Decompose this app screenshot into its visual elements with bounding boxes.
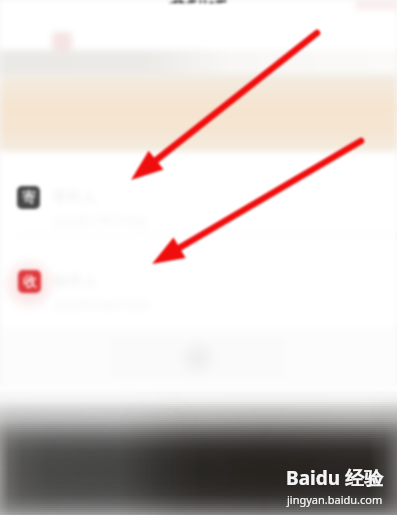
button[interactable]: 收件人 bbox=[18, 270, 41, 293]
button[interactable]: 寄件人 bbox=[17, 186, 40, 209]
staticText: Baidu 经验 bbox=[286, 465, 383, 491]
staticText: jingyan.baidu.com bbox=[287, 492, 383, 507]
staticText: 寄 bbox=[22, 189, 36, 207]
staticText: 收 bbox=[23, 273, 37, 291]
staticText: 寄快递 bbox=[0, 0, 397, 3]
